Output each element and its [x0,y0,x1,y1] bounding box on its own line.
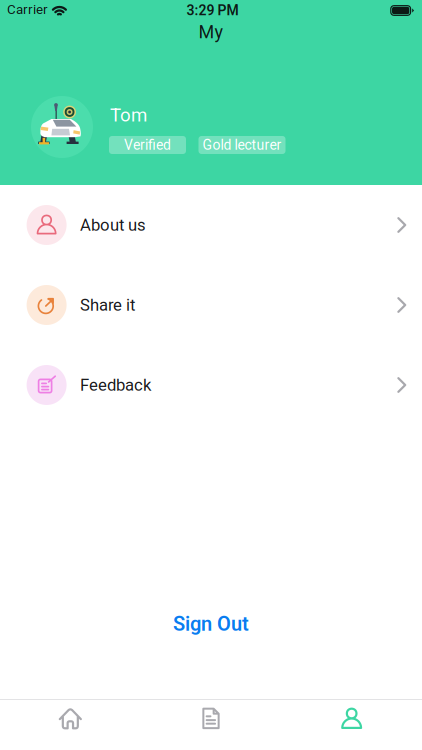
staticText: About us [80,215,146,235]
staticText: Gold lecturer [202,137,281,153]
button[interactable]: Sign Out [0,604,422,644]
button[interactable]: Feedback [0,345,422,425]
button[interactable]: Profile [281,699,422,750]
staticText: My [198,21,223,43]
staticText: Tom [110,104,147,126]
staticText: Share it [80,295,135,315]
button[interactable]: Orders [141,699,281,750]
button[interactable]: Home [0,699,141,750]
button[interactable]: About us [0,185,422,265]
staticText: Feedback [80,375,151,395]
staticText: 3:29 PM [186,2,238,19]
staticText: Sign Out [173,612,249,636]
button[interactable]: Share it [0,265,422,345]
staticText: Verified [124,137,171,153]
staticText: Carrier [7,2,48,17]
